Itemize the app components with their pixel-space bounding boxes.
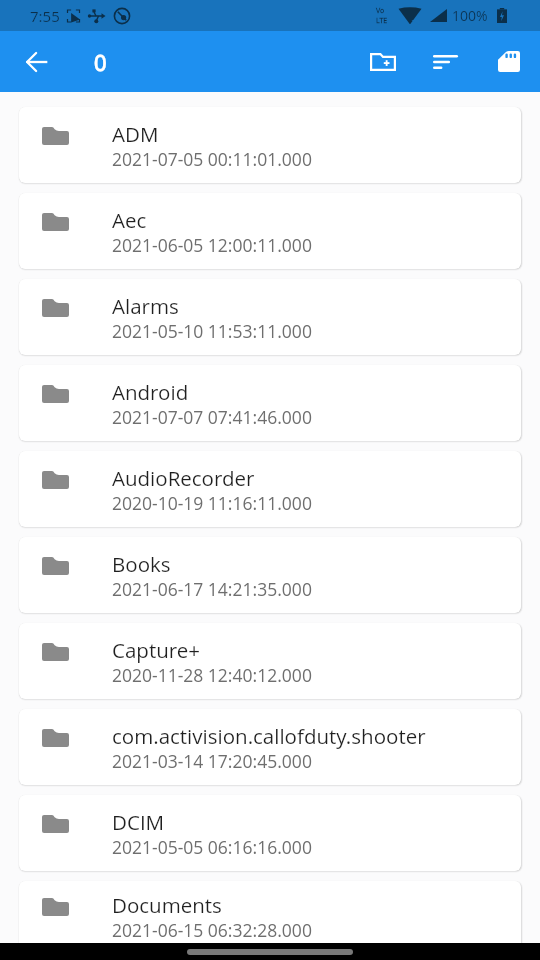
staticText: DCIM [112,808,165,836]
staticText: LTE [376,16,388,26]
staticText: 2021-06-17 14:21:35.000 [112,577,312,601]
staticText: 2020-11-28 12:40:12.000 [112,663,312,687]
staticText: Alarms [112,292,179,320]
staticText: Books [112,550,171,578]
button[interactable]: Back [13,38,61,86]
button[interactable]: Alarms [19,279,521,355]
button[interactable]: ADM [19,107,521,183]
staticText: Aec [112,206,147,234]
staticText: 2021-07-07 07:41:46.000 [112,405,312,429]
button[interactable]: Books [19,537,521,613]
staticText: Android [112,378,189,406]
staticText: AudioRecorder [112,464,255,492]
button[interactable]: Capture+ [19,623,521,699]
button[interactable]: Android [19,365,521,441]
button[interactable]: DCIM [19,795,521,871]
staticText: 0 [94,47,107,77]
staticText: 7:55 [30,6,60,26]
staticText: ADM [112,120,159,148]
button[interactable]: Sort [420,37,470,87]
button[interactable]: com.activision.callofduty.shooter [19,709,521,785]
button[interactable]: Documents [19,881,521,950]
button[interactable]: Aec [19,193,521,269]
staticText: com.activision.callofduty.shooter [112,722,426,750]
staticText: Capture+ [112,636,200,664]
staticText: 2021-06-05 12:00:11.000 [112,233,312,257]
button[interactable]: SD card storage [484,37,534,87]
button[interactable]: Create new folder [358,37,408,87]
staticText: 2021-05-05 06:16:16.000 [112,835,312,859]
button[interactable]: AudioRecorder [19,451,521,527]
staticText: Documents [112,891,222,919]
staticText: 100% [452,6,488,25]
staticText: 2021-06-15 06:32:28.000 [112,918,312,942]
staticText: Vo [376,6,385,16]
staticText: 2021-03-14 17:20:45.000 [112,749,312,773]
staticText: 2020-10-19 11:16:11.000 [112,491,312,515]
staticText: 2021-05-10 11:53:11.000 [112,319,312,343]
staticText: 2021-07-05 00:11:01.000 [112,147,312,171]
